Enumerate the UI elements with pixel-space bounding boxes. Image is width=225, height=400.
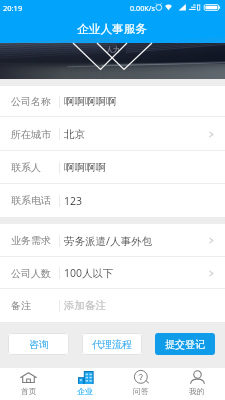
button[interactable]: 业务需求 [0,224,225,257]
staticText: 代理流程 [92,338,132,351]
staticText: 人力 [106,45,120,54]
staticText: 所在城市 [11,128,51,141]
button[interactable]: 备注 [0,289,225,322]
staticText: 企业人事服务 [77,22,148,37]
staticText: 备注 [11,299,31,312]
button[interactable]: 咨询 [8,333,69,355]
staticText: 啊啊啊啊 [64,161,216,174]
staticText: 企业 [77,386,93,396]
staticText: 业务需求 [11,234,51,247]
staticText: 0.00K/s [130,3,155,13]
button[interactable]: 提交登记 [155,333,215,355]
button[interactable]: 公司名称 [0,86,225,117]
button[interactable]: 我的 [169,368,225,400]
button[interactable]: 代理流程 [82,333,142,355]
staticText: 联系电话 [11,194,51,207]
staticText: 劳务派遣/人事外包 [64,234,207,248]
staticText: 提交登记 [165,338,205,351]
staticText: 100人以下 [64,266,207,280]
staticText: 首页 [21,386,37,396]
button[interactable]: 首页 [0,368,57,400]
button[interactable]: 所在城市 [0,117,225,151]
button[interactable]: 联系人 [0,151,225,184]
staticText: 问答 [133,386,149,396]
button[interactable]: 联系电话 [0,184,225,217]
staticText: 咨询 [29,338,49,351]
staticText: 添加备注 [64,299,216,312]
staticText: 啊啊啊啊啊 [64,95,216,108]
button[interactable]: 公司人数 [0,257,225,289]
staticText: 20:19 [3,3,23,13]
staticText: 公司名称 [11,95,51,108]
button[interactable]: 企业 [57,368,113,400]
staticText: 公司人数 [11,267,51,280]
button[interactable]: 问答 [113,368,169,400]
staticText: 123 [64,194,216,208]
staticText: 我的 [189,386,205,396]
staticText: 联系人 [11,161,41,174]
staticText: 北京 [64,128,207,141]
